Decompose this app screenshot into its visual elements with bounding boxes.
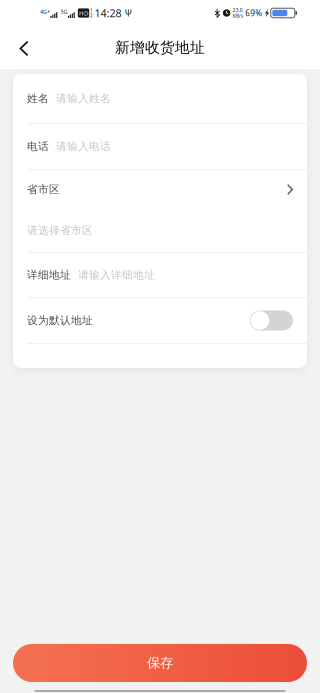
button[interactable]: 设为默认地址 [13,298,307,343]
staticText: 23.0 [233,7,243,13]
staticText: 详细地址 [27,268,71,282]
staticText: 请输入电话 [56,140,111,153]
staticText: 保存 [147,655,173,671]
staticText: HD [79,9,88,17]
staticText: 请选择省市区 [27,224,93,237]
button[interactable]: Back [0,26,48,69]
staticText: 省市区 [27,183,60,196]
staticText: 2 [90,12,93,19]
staticText: 69% [245,7,262,19]
staticText: 4G+ [40,8,50,15]
staticText: 姓名 [27,92,49,105]
staticText: 设为默认地址 [27,314,93,327]
staticText: 请输入详细地址 [78,268,155,282]
button[interactable]: 省市区 [13,170,307,252]
staticText: 电话 [27,140,49,153]
staticText: 新增收货地址 [115,38,205,57]
button[interactable]: 保存 [13,644,307,682]
staticText: 请输入姓名 [56,92,111,105]
staticText: Ψ [125,7,133,19]
staticText: KB/s [233,12,243,19]
staticText: 14:28 [95,6,122,20]
staticText: 1 [90,7,93,14]
staticText: 5G [60,8,67,15]
